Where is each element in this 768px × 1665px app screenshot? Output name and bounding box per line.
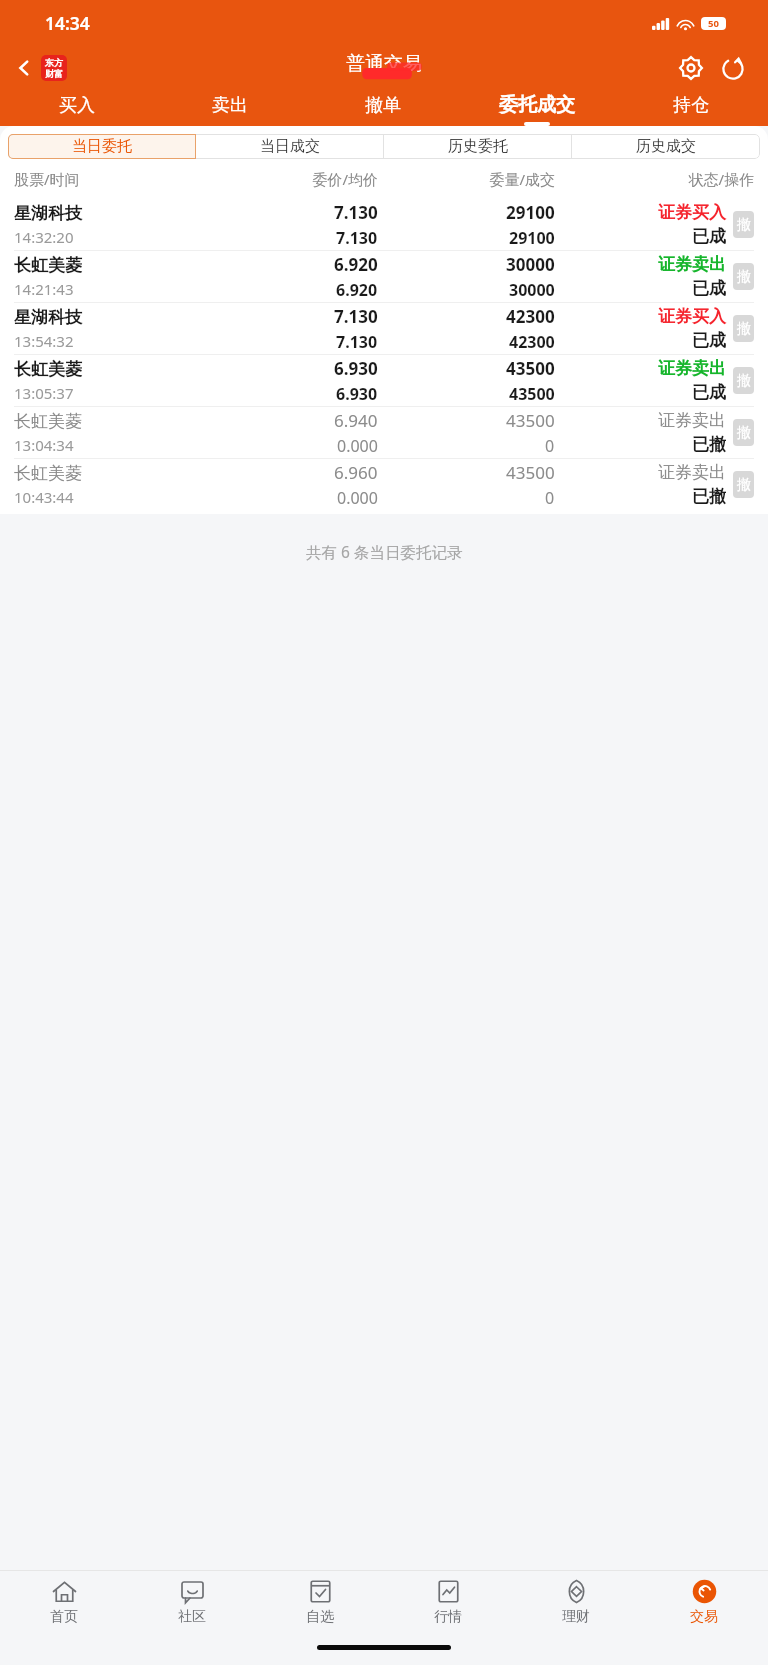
staticText: 持仓	[673, 94, 709, 117]
staticText: 普通交易	[346, 52, 422, 76]
staticText: 6.920	[336, 279, 378, 301]
staticText: 证券卖出	[658, 254, 726, 275]
staticText: 0.000	[337, 487, 378, 509]
staticText: 证券买入	[658, 306, 726, 327]
staticText: 历史委托	[448, 137, 508, 156]
button[interactable]: 持仓	[614, 88, 768, 122]
staticText: 委托成交	[499, 93, 575, 117]
staticText: 13:54:32	[14, 331, 74, 351]
button[interactable]: 当日成交	[196, 134, 384, 159]
staticText: 43500	[506, 357, 555, 380]
button[interactable]: 理财	[512, 1571, 640, 1633]
button[interactable]: 星湖科技	[0, 303, 768, 354]
button[interactable]: 长虹美菱	[0, 459, 768, 510]
button[interactable]: Back	[8, 51, 73, 85]
staticText: 理财	[562, 1608, 590, 1626]
staticText: 6.930	[334, 357, 378, 380]
button[interactable]: 撤	[733, 367, 754, 394]
staticText: 7.130	[334, 201, 378, 224]
staticText: 30000	[506, 253, 555, 276]
staticText: 30000	[509, 279, 555, 301]
staticText: 6.960	[334, 461, 378, 484]
staticText: 撤	[737, 476, 751, 494]
staticText: 42300	[509, 331, 555, 353]
button[interactable]: 自选	[256, 1571, 384, 1633]
staticText: 已成	[692, 382, 726, 403]
button[interactable]: 撤	[733, 211, 754, 238]
button[interactable]: 行情	[384, 1571, 512, 1633]
staticText: 撤	[737, 320, 751, 338]
staticText: 42300	[506, 305, 555, 328]
staticText: 证券卖出	[658, 462, 726, 483]
button[interactable]: 撤	[733, 471, 754, 498]
button[interactable]: 长虹美菱	[0, 355, 768, 406]
button[interactable]: 历史委托	[384, 134, 572, 159]
button[interactable]: 卖出	[153, 88, 306, 122]
button[interactable]: 撤	[733, 419, 754, 446]
staticText: 已撤	[692, 486, 726, 507]
staticText: 6.920	[334, 253, 378, 276]
staticText: 7.130	[334, 305, 378, 328]
button[interactable]: 首页	[0, 1571, 128, 1633]
button[interactable]: 当日委托	[8, 134, 196, 159]
staticText: 14:32:20	[14, 227, 74, 247]
staticText: 已成	[692, 330, 726, 351]
staticText: 股票/时间	[14, 169, 201, 189]
button[interactable]: 委托成交	[460, 88, 614, 122]
staticText: 43500	[506, 461, 555, 484]
staticText: 0.000	[337, 435, 378, 457]
staticText: 首页	[50, 1608, 78, 1626]
staticText: 当日委托	[72, 137, 132, 156]
staticText: 已撤	[692, 434, 726, 455]
staticText: 财富	[45, 68, 63, 79]
staticText: 撤	[737, 216, 751, 234]
button[interactable]: 社区	[128, 1571, 256, 1633]
staticText: 50	[708, 17, 719, 30]
button[interactable]: 交易	[640, 1571, 768, 1633]
button[interactable]: 撤	[733, 263, 754, 290]
staticText: 43500	[509, 383, 555, 405]
staticText: 0	[545, 487, 555, 509]
staticText: 撤	[737, 268, 751, 286]
staticText: 长虹美菱	[14, 255, 82, 276]
staticText: 43500	[506, 409, 555, 432]
staticText: 证券卖出	[658, 358, 726, 379]
staticText: 已成	[692, 278, 726, 299]
button[interactable]: 买入	[0, 88, 153, 122]
staticText: 已成	[692, 226, 726, 247]
button[interactable]: Settings	[674, 51, 708, 85]
staticText: 长虹美菱	[14, 463, 82, 484]
staticText: 撤	[737, 372, 751, 390]
staticText: 14:34	[45, 11, 90, 35]
staticText: 状态/操作	[555, 169, 754, 189]
staticText: 行情	[434, 1608, 462, 1626]
staticText: 13:04:34	[14, 435, 74, 455]
button[interactable]: 撤	[733, 315, 754, 342]
button[interactable]: 长虹美菱	[0, 407, 768, 458]
staticText: 撤	[737, 424, 751, 442]
staticText: 13:05:37	[14, 383, 74, 403]
staticText: 29100	[506, 201, 555, 224]
staticText: 6.930	[336, 383, 378, 405]
staticText: 星湖科技	[14, 307, 82, 328]
staticText: 6.940	[334, 409, 378, 432]
staticText: 证券买入	[658, 202, 726, 223]
button[interactable]: Refresh	[716, 51, 750, 85]
button[interactable]: 星湖科技	[0, 199, 768, 250]
button[interactable]: 历史成交	[572, 134, 760, 159]
staticText: 委价/均价	[201, 169, 378, 189]
staticText: 长虹美菱	[14, 359, 82, 380]
staticText: 卖出	[212, 94, 248, 117]
button[interactable]: 撤单	[306, 88, 460, 122]
staticText: 长虹美菱	[14, 411, 82, 432]
staticText: 买入	[59, 94, 95, 117]
staticText: 0	[545, 435, 555, 457]
staticText: 历史成交	[636, 137, 696, 156]
button[interactable]: 长虹美菱	[0, 251, 768, 302]
staticText: 当日成交	[260, 137, 320, 156]
staticText: 7.130	[336, 227, 378, 249]
staticText: 10:43:44	[14, 487, 74, 507]
staticText: 社区	[178, 1608, 206, 1626]
staticText: 7.130	[336, 331, 378, 353]
staticText: 29100	[509, 227, 555, 249]
